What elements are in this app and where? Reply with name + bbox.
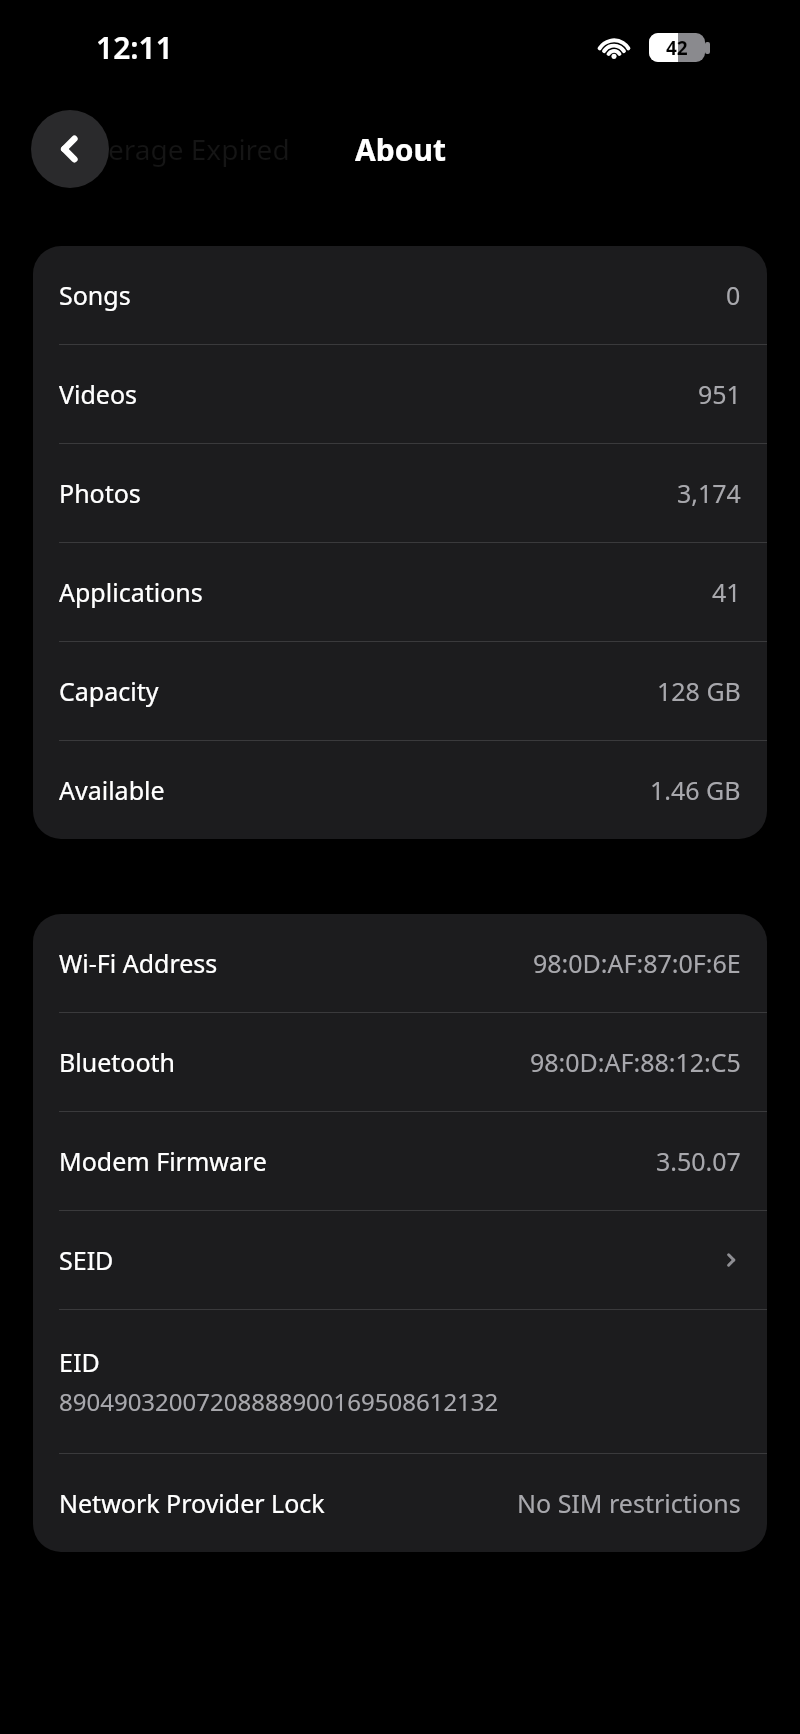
staticText: 41	[712, 575, 741, 609]
button[interactable]: EID	[33, 1310, 767, 1453]
button[interactable]: Bluetooth	[33, 1013, 767, 1111]
button[interactable]: Wi-Fi Address	[33, 914, 767, 1012]
staticText: Available	[59, 773, 165, 807]
button[interactable]: Videos	[33, 345, 767, 443]
staticText: 3,174	[677, 476, 741, 510]
staticText: 98:0D:AF:88:12:C5	[530, 1045, 741, 1079]
staticText: Videos	[59, 377, 138, 411]
button[interactable]: Back	[31, 110, 109, 188]
button[interactable]: Capacity	[33, 642, 767, 740]
button[interactable]: Available	[33, 741, 767, 839]
staticText: 128 GB	[657, 674, 741, 708]
staticText: Capacity	[59, 674, 159, 708]
staticText: About	[355, 129, 446, 170]
button[interactable]: SEID	[33, 1211, 767, 1309]
staticText: SEID	[59, 1243, 114, 1277]
staticText: 98:0D:AF:87:0F:6E	[533, 946, 741, 980]
staticText: 3.50.07	[656, 1144, 741, 1178]
staticText: Applications	[59, 575, 203, 609]
staticText: Network Provider Lock	[59, 1486, 325, 1520]
button[interactable]: Applications	[33, 543, 767, 641]
staticText: 951	[698, 377, 741, 411]
staticText: 12:11	[96, 27, 173, 68]
staticText: EID	[59, 1345, 100, 1379]
button[interactable]: Photos	[33, 444, 767, 542]
staticText: 1.46 GB	[650, 773, 741, 807]
staticText: Photos	[59, 476, 141, 510]
staticText: No SIM restrictions	[517, 1486, 741, 1520]
button[interactable]: Modem Firmware	[33, 1112, 767, 1210]
staticText: erage Expired	[108, 130, 290, 168]
staticText: Songs	[59, 278, 131, 312]
button[interactable]: Network Provider Lock	[33, 1454, 767, 1552]
staticText: 89049032007208888900169508612132	[59, 1385, 499, 1418]
staticText: 42	[666, 35, 688, 61]
button[interactable]: Songs	[33, 246, 767, 344]
staticText: Wi-Fi Address	[59, 946, 218, 980]
staticText: 0	[726, 278, 741, 312]
staticText: Bluetooth	[59, 1045, 176, 1079]
staticText: Modem Firmware	[59, 1144, 267, 1178]
